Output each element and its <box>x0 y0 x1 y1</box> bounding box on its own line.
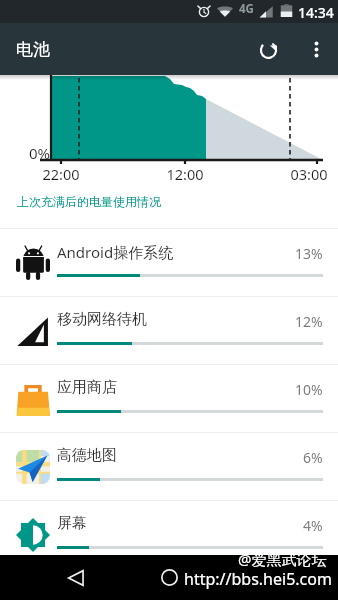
staticText: 高德地图 <box>57 446 117 465</box>
staticText: Android操作系统 <box>57 242 174 262</box>
button[interactable]: Refresh <box>242 23 294 75</box>
button[interactable]: Home <box>149 560 189 595</box>
button[interactable]: 移动网络待机 <box>0 297 338 364</box>
staticText: 4G <box>239 1 254 17</box>
button[interactable]: More options <box>294 27 338 71</box>
button[interactable]: 高德地图 <box>0 433 338 500</box>
staticText: 屏幕 <box>57 514 87 533</box>
staticText: 6% <box>303 448 323 467</box>
staticText: 12:00 <box>165 164 205 184</box>
button[interactable]: 应用商店 <box>0 365 338 432</box>
staticText: 03:00 <box>289 164 329 184</box>
staticText: 13% <box>295 244 323 263</box>
button[interactable]: Recent apps <box>249 560 289 595</box>
staticText: 4% <box>303 516 323 535</box>
staticText: 14:34 <box>298 3 334 22</box>
button[interactable]: Back <box>56 560 96 595</box>
button[interactable]: Android操作系统 <box>0 229 338 296</box>
staticText: 0% <box>10 143 50 163</box>
staticText: 应用商店 <box>57 378 117 397</box>
staticText: 22:00 <box>41 164 81 184</box>
staticText: 12% <box>295 312 323 331</box>
staticText: 移动网络待机 <box>57 310 147 329</box>
staticText: http://bbs.hei5.com <box>184 568 332 590</box>
button[interactable]: 屏幕 <box>0 501 338 568</box>
staticText: 10% <box>295 380 323 399</box>
staticText: 上次充满后的电量使用情况 <box>17 194 161 209</box>
staticText: @爱黑武论坛 <box>238 549 327 569</box>
staticText: 电池 <box>16 39 50 60</box>
